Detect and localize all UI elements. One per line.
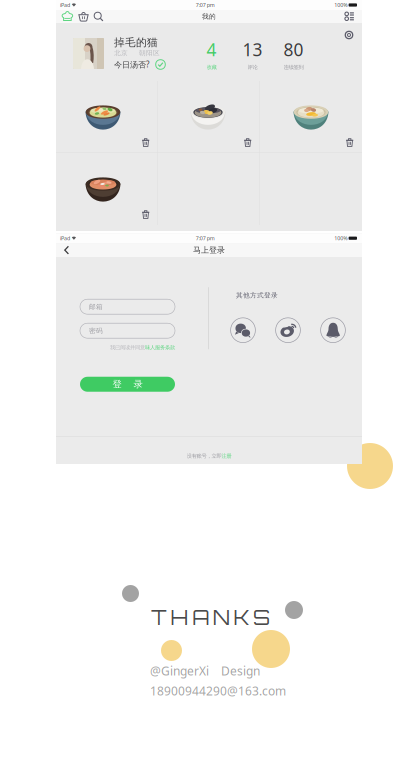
staticText: 连续签到: [283, 64, 303, 71]
staticText: 注册: [221, 453, 231, 459]
staticText: 100%: [334, 235, 347, 242]
staticText: 4: [206, 38, 216, 61]
staticText: 18900944290@163.com: [150, 683, 286, 699]
button[interactable]: More: [342, 10, 357, 23]
staticText: 味人服务条款: [145, 344, 175, 351]
staticText: @GingerXi Design: [150, 663, 260, 679]
staticText: 登 录: [112, 378, 142, 390]
staticText: 邮箱: [89, 303, 103, 311]
button[interactable]: WeChat: [230, 317, 256, 343]
staticText: 其他方式登录: [236, 291, 278, 299]
button[interactable]: Basket: [76, 10, 91, 23]
staticText: iPad: [60, 1, 70, 9]
staticText: 朝阳区: [139, 49, 160, 57]
button[interactable]: Back: [59, 244, 75, 257]
staticText: 7:07 pm: [196, 1, 215, 9]
staticText: 北京: [114, 49, 128, 57]
staticText: 收藏: [206, 64, 216, 71]
staticText: 密码: [89, 327, 103, 335]
button[interactable]: 没有账号，立即: [56, 437, 362, 464]
staticText: 没有账号，立即: [186, 453, 221, 459]
staticText: 13: [242, 38, 262, 61]
staticText: 100%: [334, 1, 347, 9]
staticText: 掉毛的猫: [114, 36, 158, 49]
button[interactable]: Weibo: [275, 317, 301, 343]
staticText: 7:07 pm: [196, 235, 215, 242]
button[interactable]: 登 录: [80, 377, 175, 392]
staticText: iPad: [60, 235, 70, 242]
button[interactable]: Recipes: [60, 10, 75, 23]
staticText: 今日汤否?: [114, 59, 149, 70]
staticText: 马上登录: [193, 245, 225, 255]
staticText: THANKS: [151, 604, 270, 630]
staticText: 评论: [247, 64, 257, 71]
button[interactable]: QQ: [320, 317, 346, 343]
staticText: 80: [283, 38, 303, 61]
staticText: 我的: [202, 12, 216, 21]
staticText: 我已阅读并同意: [110, 344, 145, 351]
button[interactable]: Search: [91, 10, 106, 23]
button[interactable]: Settings: [342, 28, 356, 42]
